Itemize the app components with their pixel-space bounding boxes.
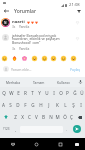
button[interactable]: Ş <box>69 99 77 111</box>
button[interactable]: H <box>37 99 45 111</box>
button[interactable]: Q <box>0 87 8 99</box>
staticText: Yanıtla <box>19 25 30 29</box>
button[interactable]: , <box>12 124 20 134</box>
staticText: W <box>9 90 14 96</box>
staticText: jahtsafer Bonushood erişyok hazırdıran, … <box>12 33 70 45</box>
button[interactable]: Ö <box>61 111 68 123</box>
staticText: Ğ <box>73 90 77 96</box>
button[interactable]: Voice input <box>76 77 85 87</box>
button[interactable]: C <box>26 111 33 123</box>
button[interactable]: Emoji <box>40 54 48 62</box>
button[interactable]: T <box>29 87 36 99</box>
staticText: H <box>39 102 43 108</box>
button[interactable]: U <box>43 87 50 99</box>
button[interactable]: Emoji <box>59 54 67 62</box>
button[interactable]: Kullanıcı <box>51 77 76 87</box>
staticText: naarti <box>12 19 25 25</box>
staticText: Ş <box>72 102 75 108</box>
staticText: C <box>28 114 31 120</box>
button[interactable]: B <box>40 111 47 123</box>
button[interactable]: Send <box>73 125 81 133</box>
staticText: N <box>49 114 53 120</box>
button[interactable]: D <box>14 99 21 111</box>
button[interactable]: Ü <box>78 87 85 99</box>
staticText: Yanıtla <box>19 47 30 51</box>
button[interactable]: Shift <box>0 111 11 123</box>
button[interactable]: F <box>21 99 29 111</box>
button[interactable]: V <box>33 111 40 123</box>
button[interactable]: Merhaba <box>0 77 26 87</box>
button[interactable]: Switch keyboard <box>71 138 83 150</box>
button[interactable]: Z <box>11 111 19 123</box>
button[interactable]: I <box>50 87 57 99</box>
staticText: O <box>59 90 63 96</box>
button[interactable]: W <box>8 87 15 99</box>
button[interactable]: Y <box>36 87 43 99</box>
button[interactable]: N <box>47 111 54 123</box>
button[interactable]: Paylaş <box>68 65 83 73</box>
button[interactable]: Like <box>73 19 82 26</box>
button[interactable]: Emoji <box>0 54 8 62</box>
staticText: , <box>15 127 17 132</box>
button[interactable]: J <box>45 99 53 111</box>
button[interactable]: Hide keyboard <box>7 138 19 150</box>
staticText: X <box>21 114 24 120</box>
button[interactable]: Emoji <box>20 54 28 62</box>
staticText: K <box>56 102 59 108</box>
button[interactable]: M <box>54 111 61 123</box>
staticText: D <box>16 102 20 108</box>
staticText: . <box>66 127 68 132</box>
staticText: Kullanıcı <box>57 80 70 84</box>
staticText: G <box>31 102 35 108</box>
button[interactable]: O <box>57 87 64 99</box>
staticText: I <box>80 102 82 108</box>
staticText: P <box>66 90 69 96</box>
button[interactable]: Home <box>30 138 42 150</box>
button[interactable]: P <box>64 87 71 99</box>
button[interactable]: X <box>19 111 26 123</box>
staticText: T <box>31 90 34 96</box>
staticText: I <box>53 90 55 96</box>
staticText: R <box>24 90 27 96</box>
button[interactable]: Ç <box>68 111 75 123</box>
button[interactable]: Ğ <box>71 87 78 99</box>
staticText: Y <box>38 90 41 96</box>
staticText: Ö <box>63 114 67 120</box>
staticText: Ü <box>80 90 84 96</box>
button[interactable]: E <box>15 87 22 99</box>
button[interactable]: I <box>77 99 85 111</box>
button[interactable]: Filter <box>74 7 83 15</box>
staticText: ?123 <box>3 127 10 131</box>
button[interactable]: Emoji <box>10 54 18 62</box>
staticText: A <box>2 102 5 108</box>
button[interactable]: ?123 <box>0 124 12 134</box>
button[interactable]: Emoji <box>49 54 57 62</box>
button[interactable]: Tamam <box>26 77 51 87</box>
button[interactable]: Back <box>1 7 12 15</box>
staticText: V <box>35 114 38 120</box>
staticText: Paylaş <box>70 67 81 72</box>
button[interactable]: G <box>29 99 37 111</box>
button[interactable]: S <box>7 99 14 111</box>
staticText: Merhaba <box>6 80 20 84</box>
staticText: Yorum ekle… <box>11 67 32 72</box>
button[interactable]: Recents <box>54 138 66 150</box>
button[interactable]: A <box>0 99 7 111</box>
staticText: B <box>42 114 45 120</box>
staticText: Z <box>14 114 17 120</box>
button[interactable]: Emoji <box>30 54 38 62</box>
button[interactable]: R <box>22 87 29 99</box>
staticText: Ç <box>70 114 73 120</box>
button[interactable]: K <box>53 99 61 111</box>
button[interactable]: Like <box>73 35 82 42</box>
staticText: E <box>17 90 20 96</box>
staticText: M <box>55 114 60 120</box>
staticText: 3s <box>12 25 16 29</box>
button[interactable]: Backspace <box>75 111 85 123</box>
staticText: L <box>64 102 67 108</box>
staticText: F <box>24 102 27 108</box>
button[interactable]: Emoji <box>69 54 77 62</box>
button[interactable]: L <box>61 99 69 111</box>
